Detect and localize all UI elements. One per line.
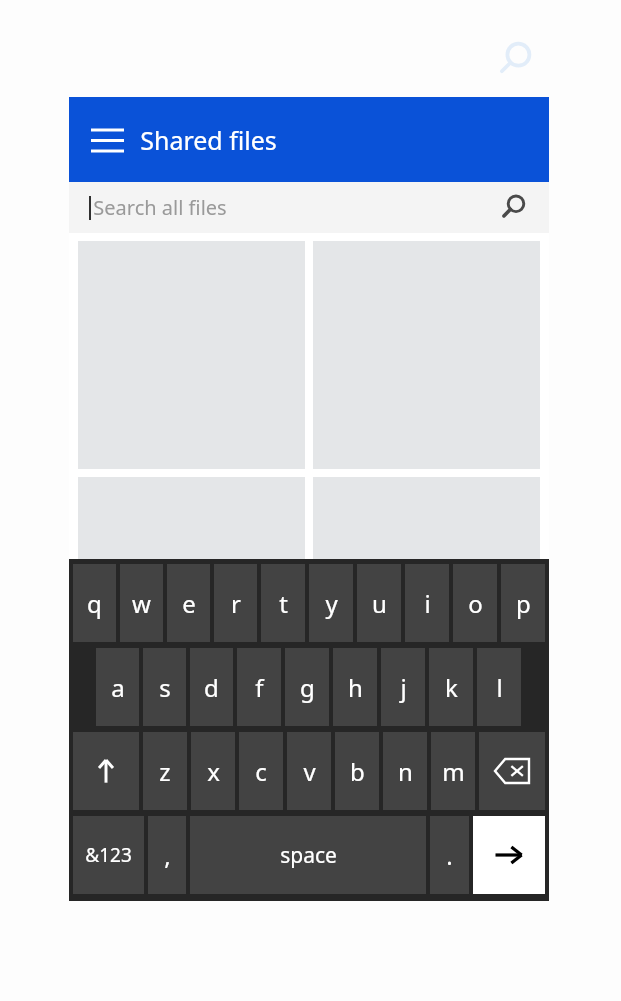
- button[interactable]: Enter: [473, 816, 545, 894]
- staticText: .: [446, 839, 453, 872]
- staticText: l: [496, 671, 503, 704]
- button[interactable]: n: [383, 732, 427, 810]
- button[interactable]: f: [237, 648, 281, 726]
- button[interactable]: q: [73, 564, 116, 642]
- button[interactable]: x: [191, 732, 235, 810]
- button[interactable]: y: [309, 564, 353, 642]
- staticText: k: [445, 671, 458, 704]
- button[interactable]: p: [501, 564, 545, 642]
- button[interactable]: i: [405, 564, 449, 642]
- staticText: Search all files: [93, 194, 227, 221]
- staticText: x: [207, 755, 220, 788]
- button[interactable]: ,: [148, 816, 186, 894]
- staticText: space: [280, 841, 337, 870]
- button[interactable]: s: [143, 648, 186, 726]
- staticText: d: [204, 671, 219, 704]
- staticText: o: [468, 587, 483, 620]
- button[interactable]: [78, 477, 305, 705]
- staticText: n: [398, 755, 413, 788]
- button[interactable]: h: [333, 648, 377, 726]
- button[interactable]: g: [285, 648, 329, 726]
- button[interactable]: j: [381, 648, 425, 726]
- button[interactable]: c: [239, 732, 283, 810]
- button[interactable]: e: [167, 564, 210, 642]
- button[interactable]: Shift: [73, 732, 139, 810]
- button[interactable]: Backspace: [479, 732, 545, 810]
- button[interactable]: &123: [73, 816, 144, 894]
- staticText: ,: [164, 839, 171, 872]
- button[interactable]: w: [120, 564, 163, 642]
- staticText: g: [300, 671, 315, 704]
- button[interactable]: o: [453, 564, 497, 642]
- button[interactable]: a: [96, 648, 139, 726]
- staticText: Shared files: [140, 123, 277, 157]
- button[interactable]: r: [214, 564, 257, 642]
- staticText: a: [111, 671, 125, 704]
- staticText: &123: [85, 842, 132, 868]
- staticText: v: [303, 755, 316, 788]
- staticText: c: [255, 755, 267, 788]
- staticText: b: [350, 755, 365, 788]
- button[interactable]: Search: [493, 188, 533, 228]
- staticText: i: [424, 587, 431, 620]
- button[interactable]: t: [261, 564, 305, 642]
- button[interactable]: space: [190, 816, 426, 894]
- button[interactable]: m: [431, 732, 475, 810]
- staticText: h: [348, 671, 363, 704]
- button[interactable]: Search all files: [69, 182, 549, 233]
- staticText: p: [516, 587, 531, 620]
- staticText: r: [231, 587, 241, 620]
- staticText: j: [400, 671, 407, 704]
- staticText: f: [255, 671, 264, 704]
- button[interactable]: [313, 477, 540, 705]
- button[interactable]: Open navigation menu: [83, 116, 131, 164]
- staticText: y: [325, 587, 338, 620]
- staticText: t: [279, 587, 288, 620]
- button[interactable]: .: [430, 816, 469, 894]
- button[interactable]: d: [190, 648, 233, 726]
- button[interactable]: l: [477, 648, 521, 726]
- button[interactable]: b: [335, 732, 379, 810]
- button[interactable]: k: [429, 648, 473, 726]
- staticText: q: [87, 587, 102, 620]
- button[interactable]: v: [287, 732, 331, 810]
- button[interactable]: u: [357, 564, 401, 642]
- staticText: u: [372, 587, 387, 620]
- staticText: s: [159, 671, 171, 704]
- staticText: m: [442, 755, 465, 788]
- staticText: e: [182, 587, 196, 620]
- staticText: z: [159, 755, 171, 788]
- staticText: w: [132, 587, 151, 620]
- button[interactable]: z: [143, 732, 187, 810]
- button[interactable]: Search: [492, 38, 536, 82]
